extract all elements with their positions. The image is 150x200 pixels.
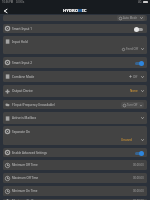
button[interactable]: Output Device (3, 85, 147, 97)
button[interactable]: F Input (Frequency Unavailable) (3, 100, 147, 109)
button[interactable]: Smart Input 2 (3, 57, 147, 68)
staticText: Turn Off (127, 103, 138, 107)
staticText: 00:00:00 (133, 176, 144, 180)
staticText: Auto Mode (123, 16, 137, 20)
button[interactable]: Smart Input 1 (3, 24, 147, 33)
button[interactable]: Minimum Off Time (3, 160, 147, 170)
button[interactable]: Toggle (134, 26, 144, 32)
button[interactable]: Back (0, 7, 11, 14)
staticText: Unused (121, 138, 132, 142)
staticText: Separate On (12, 130, 31, 134)
staticText: Input Hold (12, 40, 28, 44)
staticText: M (78, 8, 82, 14)
staticText: 00:00:00 (133, 163, 144, 167)
staticText: Output Device (12, 89, 33, 93)
staticText: Smart Input 1 (12, 27, 32, 31)
staticText: Minimum On Time (12, 189, 38, 193)
staticText: 4G (138, 0, 142, 4)
button[interactable]: Toggle (134, 60, 144, 66)
staticText: Off (133, 75, 138, 79)
staticText: Maximum Off Time (12, 176, 39, 180)
staticText: 00:00:00 (133, 199, 144, 200)
button[interactable]: Input Hold (3, 36, 147, 54)
button[interactable]: Auto Mode (119, 16, 143, 20)
staticText: Minimum Off Time (12, 163, 38, 167)
button[interactable]: Maximum On Time (3, 199, 147, 200)
button[interactable]: Toggle (134, 150, 144, 156)
button[interactable]: Maximum Off Time (3, 173, 147, 183)
staticText: 10:36 PM (2, 0, 14, 4)
button[interactable]: Unused (121, 138, 144, 142)
staticText: 00:00:00 (133, 189, 144, 193)
staticText: Enable Advanced Settings (12, 151, 47, 155)
staticText: Combine Mode (12, 75, 35, 79)
button[interactable]: Enable Advanced Settings (3, 148, 147, 157)
staticText: Maximum On Time (12, 199, 38, 200)
button[interactable]: Turn Off (123, 103, 142, 107)
button[interactable]: Feed Off (122, 47, 144, 51)
staticText: 0.0 K/s (16, 0, 25, 4)
button[interactable]: Combine Mode (3, 71, 147, 82)
staticText: Smart Input 2 (12, 61, 32, 65)
staticText: Feed Off (126, 47, 138, 51)
staticText: F Input (Frequency Unavailable) (12, 103, 55, 107)
button[interactable]: Minimum On Time (3, 186, 147, 196)
staticText: None (130, 89, 138, 93)
staticText: IC (82, 8, 87, 14)
staticText: Active is Mailbox (12, 116, 37, 120)
button[interactable]: Active is Mailbox (3, 112, 147, 124)
button[interactable]: Auto Mode (3, 15, 147, 21)
button[interactable]: Separate On (3, 126, 147, 145)
staticText: HYDRO (63, 8, 78, 14)
